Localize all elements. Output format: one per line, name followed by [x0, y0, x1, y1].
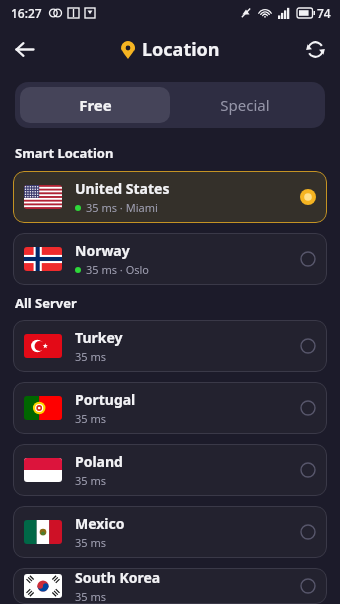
button[interactable]: United States: [13, 171, 327, 223]
staticText: Smart Location: [15, 144, 114, 162]
staticText: 35 ms · Miami: [86, 200, 158, 215]
staticText: Free: [79, 95, 112, 115]
button[interactable]: Back: [6, 31, 42, 67]
button[interactable]: Norway: [13, 233, 327, 285]
button[interactable]: Turkey: [13, 320, 327, 372]
button[interactable]: Refresh: [297, 31, 333, 67]
button[interactable]: Portugal: [13, 382, 327, 434]
staticText: 35 ms: [75, 349, 106, 364]
staticText: South Korea: [75, 568, 161, 587]
staticText: 35 ms: [75, 535, 106, 550]
button[interactable]: Mexico: [13, 506, 327, 558]
staticText: Location: [142, 37, 220, 62]
button[interactable]: South Korea: [13, 568, 327, 604]
staticText: 74: [317, 5, 331, 21]
button[interactable]: Free: [20, 87, 170, 123]
staticText: Mexico: [75, 514, 125, 533]
staticText: Portugal: [75, 390, 136, 409]
staticText: 35 ms: [75, 411, 106, 426]
staticText: Turkey: [75, 328, 123, 347]
staticText: United States: [75, 179, 170, 198]
staticText: All Server: [15, 294, 77, 312]
staticText: 35 ms: [75, 473, 106, 488]
button[interactable]: Poland: [13, 444, 327, 496]
staticText: 35 ms: [75, 589, 106, 604]
staticText: 35 ms · Oslo: [86, 262, 150, 277]
staticText: Poland: [75, 452, 123, 471]
staticText: Norway: [75, 241, 130, 260]
staticText: Special: [220, 95, 270, 115]
staticText: 16:27: [11, 5, 42, 21]
button[interactable]: Special: [170, 87, 320, 123]
